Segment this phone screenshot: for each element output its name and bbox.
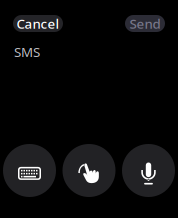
button[interactable]: Keyboard bbox=[3, 144, 56, 197]
button[interactable]: Dictate bbox=[122, 144, 175, 197]
button[interactable]: Send bbox=[125, 15, 165, 32]
staticText: SMS bbox=[14, 43, 40, 61]
staticText: Cancel bbox=[16, 15, 59, 32]
staticText: Send bbox=[129, 15, 160, 32]
button[interactable]: Scribble bbox=[62, 144, 115, 197]
button[interactable]: Cancel bbox=[13, 15, 63, 32]
